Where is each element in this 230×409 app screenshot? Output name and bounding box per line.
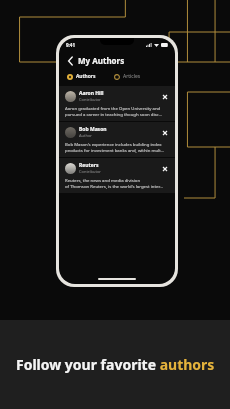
staticText: Articles (123, 73, 141, 80)
button[interactable]: Remove Reuters (160, 164, 169, 173)
staticText: Contributor (79, 169, 101, 174)
button[interactable]: Articles (113, 71, 142, 82)
staticText: 9:41 (66, 42, 75, 48)
button[interactable]: Bob Mason (59, 122, 175, 157)
staticText: Author (79, 133, 93, 138)
button[interactable]: Authors (66, 71, 97, 82)
staticText: Aaron Hill (79, 90, 104, 97)
staticText: Bob Mason's experience includes building… (65, 141, 165, 153)
button[interactable]: Remove Aaron Hill (160, 92, 169, 101)
staticText: Reuters, the news and media division of … (65, 177, 163, 189)
button[interactable]: Back (65, 55, 76, 66)
button[interactable]: Aaron Hill (59, 86, 175, 121)
staticText: Reuters (79, 162, 99, 169)
staticText: Bob Mason (79, 126, 107, 133)
staticText: Aaron graduated from the Open University… (65, 105, 163, 117)
staticText: Contributor (79, 97, 101, 102)
button[interactable]: Reuters (59, 158, 175, 193)
staticText: Follow your favorite authors (16, 355, 215, 374)
button[interactable]: Remove Bob Mason (160, 128, 169, 137)
staticText: Authors (76, 73, 96, 80)
staticText: My Authors (78, 55, 125, 66)
